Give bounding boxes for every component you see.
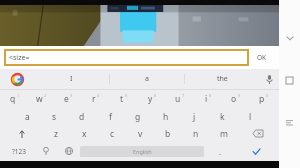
button[interactable]: d xyxy=(68,108,96,125)
button[interactable]: x xyxy=(70,125,98,142)
button[interactable]: l xyxy=(236,108,264,125)
button[interactable]: Emoji xyxy=(35,142,57,160)
staticText: . xyxy=(219,146,222,157)
staticText: b xyxy=(165,128,171,140)
staticText: 5 xyxy=(125,93,128,98)
button[interactable]: Home xyxy=(279,70,300,91)
staticText: x xyxy=(82,128,87,140)
button[interactable]: f xyxy=(96,108,124,125)
button[interactable]: j xyxy=(180,108,208,125)
staticText: k xyxy=(220,111,225,123)
button[interactable]: q xyxy=(1,90,28,108)
staticText: g xyxy=(135,111,141,123)
staticText: z xyxy=(54,128,58,140)
button[interactable]: Back xyxy=(279,27,300,48)
staticText: f xyxy=(109,111,112,123)
button[interactable]: Recent apps xyxy=(279,113,300,134)
button[interactable]: Google xyxy=(0,69,34,89)
button[interactable]: Enter xyxy=(236,142,277,160)
button[interactable]: m xyxy=(210,125,238,142)
staticText: t xyxy=(120,93,124,105)
button[interactable]: ?123 xyxy=(2,142,35,160)
staticText: a xyxy=(25,111,30,123)
staticText: 0 xyxy=(266,93,269,98)
staticText: j xyxy=(193,111,196,123)
staticText: r xyxy=(92,93,96,105)
button[interactable]: the xyxy=(185,69,259,89)
button[interactable]: v xyxy=(126,125,154,142)
staticText: c xyxy=(110,128,115,140)
button[interactable]: a xyxy=(110,69,184,89)
staticText: w xyxy=(36,93,43,105)
button[interactable]: o xyxy=(222,90,250,108)
button[interactable]: a xyxy=(14,108,41,125)
button[interactable]: Backspace xyxy=(238,125,278,142)
button[interactable]: w xyxy=(28,90,55,108)
staticText: y xyxy=(148,93,153,105)
button[interactable]: u xyxy=(166,90,194,108)
staticText: 6 xyxy=(154,93,157,98)
staticText: <size= xyxy=(9,53,30,63)
button[interactable]: p xyxy=(250,90,278,108)
button[interactable]: r xyxy=(82,90,110,108)
button[interactable]: i xyxy=(194,90,222,108)
staticText: 9 xyxy=(238,93,241,98)
staticText: ?123 xyxy=(12,147,26,156)
button[interactable]: <size= xyxy=(4,49,249,66)
staticText: OK xyxy=(257,53,267,62)
button[interactable]: Voice input xyxy=(259,69,279,89)
button[interactable]: Shift xyxy=(1,125,42,142)
button[interactable]: h xyxy=(152,108,180,125)
staticText: 3 xyxy=(70,93,73,98)
staticText: 1 xyxy=(17,93,20,98)
staticText: 2 xyxy=(44,93,47,98)
staticText: l xyxy=(249,111,252,123)
staticText: 4 xyxy=(97,93,100,98)
staticText: h xyxy=(163,111,169,123)
button[interactable]: g xyxy=(124,108,152,125)
staticText: I xyxy=(70,74,73,84)
staticText: m xyxy=(220,128,228,140)
button[interactable]: Change language xyxy=(57,142,80,160)
button[interactable]: b xyxy=(154,125,182,142)
button[interactable]: English xyxy=(80,146,204,157)
button[interactable]: n xyxy=(182,125,210,142)
staticText: i xyxy=(205,93,208,105)
button[interactable]: t xyxy=(110,90,138,108)
staticText: 7 xyxy=(182,93,185,98)
button[interactable]: I xyxy=(34,69,109,89)
staticText: e xyxy=(64,93,69,105)
staticText: v xyxy=(138,128,143,140)
button[interactable]: z xyxy=(42,125,70,142)
staticText: q xyxy=(10,93,16,105)
staticText: the xyxy=(217,74,228,84)
button[interactable]: OK xyxy=(249,46,275,69)
button[interactable]: y xyxy=(138,90,166,108)
button[interactable]: s xyxy=(41,108,68,125)
button[interactable]: k xyxy=(208,108,236,125)
staticText: a xyxy=(145,74,149,84)
staticText: u xyxy=(175,93,181,105)
staticText: s xyxy=(52,111,57,123)
staticText: d xyxy=(79,111,85,123)
staticText: n xyxy=(193,128,199,140)
button[interactable]: c xyxy=(98,125,126,142)
button[interactable]: e xyxy=(55,90,82,108)
staticText: o xyxy=(231,93,237,105)
button[interactable]: . xyxy=(204,142,236,160)
staticText: p xyxy=(259,93,265,105)
staticText: English xyxy=(133,148,152,155)
staticText: 8 xyxy=(209,93,212,98)
